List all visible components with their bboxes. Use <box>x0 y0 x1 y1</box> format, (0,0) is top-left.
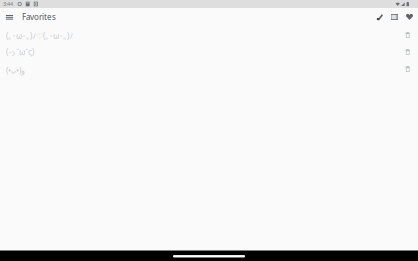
staticText: 3:44 <box>3 0 13 8</box>
staticText: (っ˘ω˘ς) <box>6 47 34 57</box>
button[interactable]: (•̀ᴗ•́)و <box>0 60 418 77</box>
staticText: (｡･ω･｡)ﾉ♡(｡･ω･｡)ﾉ <box>6 31 73 41</box>
button[interactable]: (っ˘ω˘ς) <box>0 43 418 60</box>
staticText: Favorites <box>22 12 56 22</box>
staticText: (•̀ᴗ•́)و <box>6 65 25 76</box>
button[interactable]: (｡･ω･｡)ﾉ♡(｡･ω･｡)ﾉ <box>0 26 418 43</box>
button[interactable]: Open navigation menu <box>0 8 19 26</box>
button[interactable]: Change layout <box>387 8 402 26</box>
button[interactable]: Favorites <box>402 8 417 26</box>
button[interactable]: Edit <box>372 8 387 26</box>
